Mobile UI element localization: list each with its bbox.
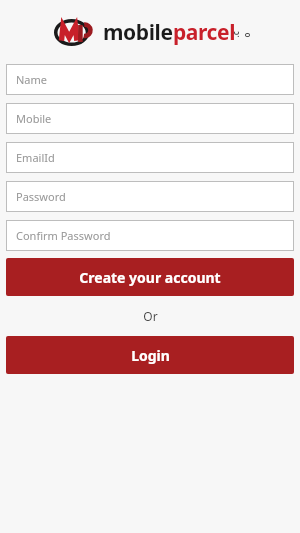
staticText: EmailId <box>16 150 55 165</box>
staticText: Confirm Password <box>16 228 111 243</box>
staticText: .com <box>229 28 253 37</box>
button[interactable]: Name <box>6 64 294 95</box>
button[interactable]: Login <box>6 336 294 374</box>
button[interactable]: EmailId <box>6 142 294 173</box>
staticText: Mobile <box>16 111 52 126</box>
staticText: Create your account <box>79 268 221 287</box>
staticText: Login <box>131 346 170 365</box>
staticText: Or <box>143 308 158 324</box>
button[interactable]: Password <box>6 181 294 212</box>
staticText: mobile <box>103 18 173 47</box>
staticText: Name <box>16 72 48 87</box>
staticText: parcel <box>173 18 236 47</box>
button[interactable]: Confirm Password <box>6 220 294 251</box>
staticText: Password <box>16 189 66 204</box>
button[interactable]: Mobile <box>6 103 294 134</box>
button[interactable]: Create your account <box>6 258 294 296</box>
